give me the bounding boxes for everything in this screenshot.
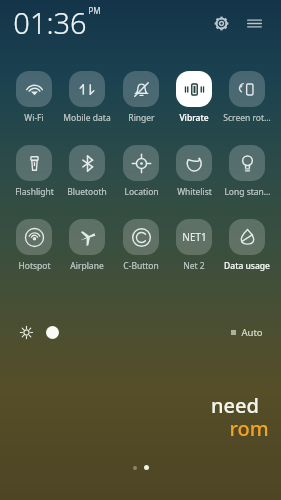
- staticText: Net 2: [183, 260, 205, 272]
- staticText: Whitelist: [177, 186, 212, 198]
- button[interactable]: Hotspot: [8, 218, 60, 273]
- staticText: Screen rot…: [223, 112, 271, 124]
- staticText: 01:36: [13, 3, 87, 42]
- button[interactable]: C-Button: [115, 218, 167, 273]
- staticText: Bluetooth: [67, 186, 107, 198]
- button[interactable]: NET1: [168, 218, 220, 273]
- button[interactable]: Whitelist: [168, 144, 220, 199]
- button[interactable]: Screen rot…: [221, 70, 273, 125]
- button[interactable]: Bluetooth: [61, 144, 113, 199]
- button[interactable]: Flashlight: [8, 144, 60, 199]
- staticText: Flashlight: [15, 186, 54, 198]
- staticText: Airplane: [70, 260, 104, 272]
- button[interactable]: Location: [115, 144, 167, 199]
- button[interactable]: [44, 321, 229, 343]
- staticText: PM: [88, 5, 101, 16]
- staticText: Mobile data: [63, 112, 111, 124]
- staticText: Data usage: [224, 260, 270, 272]
- staticText: NET1: [182, 230, 207, 244]
- button[interactable]: Wi-Fi: [8, 70, 60, 125]
- staticText: Long stan…: [224, 186, 271, 198]
- staticText: need: [211, 392, 259, 419]
- staticText: Ringer: [128, 112, 155, 124]
- staticText: Location: [124, 186, 159, 198]
- button[interactable]: Auto: [229, 324, 265, 341]
- button[interactable]: Data usage: [221, 218, 273, 273]
- button[interactable]: Menu: [241, 10, 267, 36]
- button[interactable]: Mobile data: [61, 70, 113, 125]
- button[interactable]: Vibrate: [168, 70, 220, 125]
- button[interactable]: Long stan…: [221, 144, 273, 199]
- button[interactable]: Ringer: [115, 70, 167, 125]
- button[interactable]: Settings: [208, 10, 234, 36]
- staticText: rom: [229, 415, 269, 440]
- other: Brightness: [16, 322, 36, 342]
- staticText: Wi-Fi: [24, 112, 44, 124]
- staticText: Vibrate: [179, 112, 209, 124]
- button[interactable]: Airplane: [61, 218, 113, 273]
- staticText: Auto: [241, 326, 263, 339]
- staticText: Hotspot: [18, 260, 51, 272]
- staticText: C-Button: [123, 260, 159, 272]
